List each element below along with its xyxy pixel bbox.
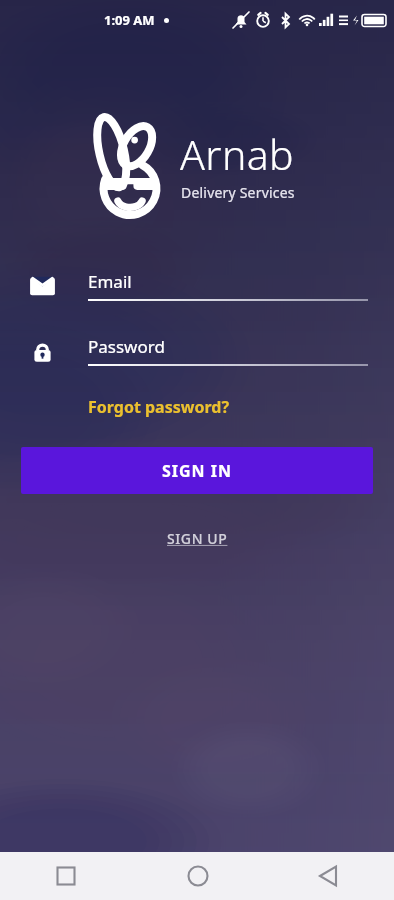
- staticText: Delivery Services: [181, 183, 295, 202]
- staticText: Forgot password?: [88, 396, 230, 418]
- button[interactable]: Back: [263, 852, 394, 900]
- button[interactable]: Password: [0, 335, 394, 377]
- button[interactable]: SIGN IN: [21, 447, 373, 494]
- button[interactable]: SIGN UP: [161, 526, 234, 551]
- staticText: Password: [88, 335, 165, 358]
- button[interactable]: Forgot password?: [84, 393, 234, 421]
- staticText: SIGN UP: [167, 529, 228, 548]
- staticText: SIGN IN: [162, 460, 233, 482]
- button[interactable]: Email: [0, 270, 394, 312]
- staticText: Arnab: [180, 126, 295, 182]
- staticText: Email: [88, 270, 132, 293]
- button[interactable]: Recent apps: [0, 852, 132, 900]
- button[interactable]: Home: [132, 852, 263, 900]
- staticText: 1:09 AM: [104, 11, 155, 29]
